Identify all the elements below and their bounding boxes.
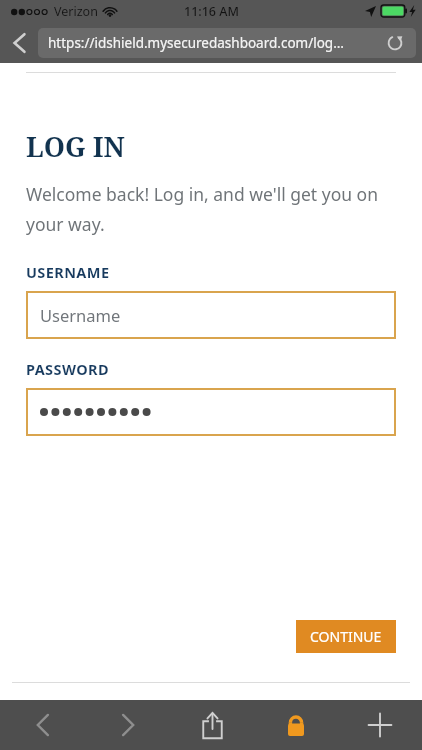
staticText: USERNAME	[26, 262, 110, 282]
button[interactable]: New tab	[338, 700, 422, 750]
button[interactable]: Username	[26, 291, 396, 339]
button[interactable]	[26, 388, 396, 436]
button[interactable]: Back	[0, 700, 85, 750]
button[interactable]: Reload	[384, 32, 406, 54]
staticText: https://idshield.mysecuredashboard.com/l…	[48, 34, 384, 52]
button[interactable]: Forward	[85, 700, 170, 750]
button[interactable]: Back	[0, 22, 38, 63]
button[interactable]: Share	[170, 700, 254, 750]
button[interactable]: CONTINUE	[296, 620, 396, 653]
staticText: Verizon	[54, 3, 98, 20]
staticText: CONTINUE	[310, 627, 382, 646]
button[interactable]: Secure site	[254, 700, 338, 750]
staticText: LOG IN	[26, 128, 125, 165]
staticText: PASSWORD	[26, 359, 109, 379]
staticText: Welcome back! Log in, and we'll get you …	[26, 182, 396, 236]
staticText: Username	[40, 304, 121, 326]
button[interactable]: https://idshield.mysecuredashboard.com/l…	[38, 28, 416, 58]
staticText: 11:16 AM	[184, 3, 239, 20]
